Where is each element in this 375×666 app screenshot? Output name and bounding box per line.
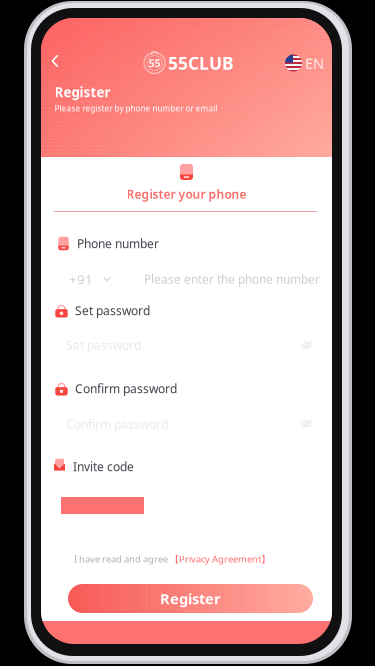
staticText: Register — [54, 83, 110, 101]
staticText: +91 — [69, 270, 93, 288]
button[interactable]: Country code +91 — [69, 269, 144, 289]
button[interactable]: I have read and agree — [74, 552, 324, 566]
staticText: Please register by phone number or email — [54, 103, 217, 114]
button[interactable]: Show Set password — [296, 336, 318, 354]
button[interactable]: Show Confirm password — [296, 415, 318, 433]
staticText: 55CLUB — [168, 51, 234, 74]
staticText: 【Privacy Agreement】 — [170, 553, 270, 565]
staticText: Set password — [75, 302, 150, 318]
button[interactable]: Back — [41, 46, 69, 76]
staticText: Confirm password — [66, 416, 168, 432]
staticText: Phone number — [77, 235, 159, 251]
staticText: Register your phone — [126, 186, 246, 202]
button[interactable]: Register — [68, 584, 313, 613]
button[interactable]: Language English — [285, 52, 331, 74]
staticText: Confirm password — [75, 380, 177, 396]
staticText: Set password — [66, 337, 141, 353]
staticText: Register — [160, 589, 221, 608]
staticText: 55 — [148, 56, 160, 70]
staticText: Invite code — [73, 458, 134, 474]
staticText: EN — [305, 53, 324, 73]
staticText: Please enter the phone number — [144, 271, 320, 287]
staticText: I have read and agree — [74, 553, 168, 565]
